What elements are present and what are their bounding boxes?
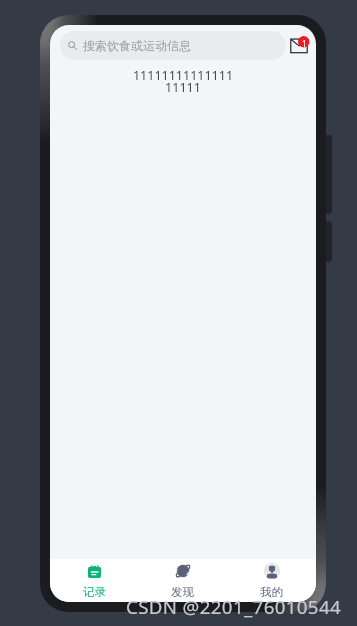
button[interactable]: Messages (290, 36, 310, 54)
button[interactable]: 搜索饮食或运动信息 (60, 31, 286, 60)
staticText: 搜索饮食或运动信息 (83, 38, 191, 53)
staticText: 11111111111111 11111 (50, 67, 316, 96)
button[interactable]: 我的 (227, 559, 316, 599)
button[interactable]: 记录 (50, 559, 138, 599)
button[interactable]: 发现 (138, 559, 227, 599)
staticText: 1 (302, 38, 307, 49)
staticText: 记录 (83, 585, 106, 599)
staticText: 发现 (171, 585, 194, 599)
staticText: 我的 (260, 585, 283, 599)
staticText: CSDN @2201_76010544 (126, 594, 341, 619)
